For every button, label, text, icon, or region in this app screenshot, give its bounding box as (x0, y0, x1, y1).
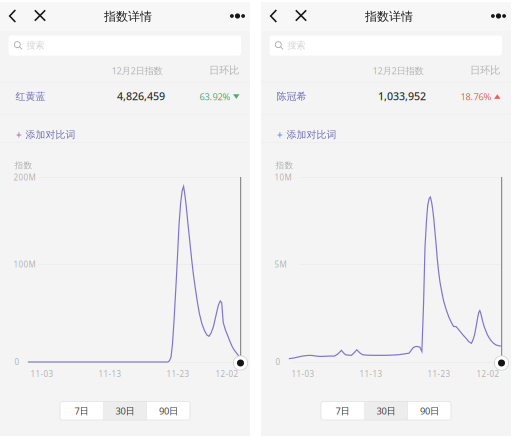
staticText: 30日 (115, 404, 134, 417)
staticText: 指数详情 (104, 9, 152, 24)
button[interactable]: 90日 (147, 402, 190, 420)
staticText: 12月2日指数 (372, 64, 423, 77)
staticText: 10M (274, 172, 291, 183)
button[interactable]: 搜索 (270, 35, 502, 55)
staticText: + (277, 128, 283, 141)
staticText: 添加对比词 (286, 128, 336, 141)
staticText: 1,033,952 (378, 89, 426, 103)
staticText: 90日 (420, 404, 439, 417)
staticText: 90日 (159, 404, 178, 417)
staticText: 200M (13, 172, 35, 183)
button[interactable]: Back (261, 4, 285, 28)
staticText: 搜索 (287, 40, 305, 51)
button[interactable]: 7日 (60, 402, 103, 420)
staticText: 30日 (376, 404, 395, 417)
staticText: 100M (13, 259, 35, 270)
staticText: 11-13 (98, 368, 121, 379)
staticText: 0 (15, 356, 20, 367)
staticText: 12月2日指数 (111, 64, 162, 77)
staticText: 7日 (74, 404, 88, 417)
staticText: 11-13 (359, 368, 382, 379)
staticText: 红黄蓝 (15, 90, 45, 103)
staticText: 12-02 (215, 368, 238, 379)
staticText: 5M (274, 259, 286, 270)
button[interactable]: 搜索 (9, 35, 241, 55)
staticText: 12-02 (476, 368, 499, 379)
staticText: 18.76% (460, 90, 491, 103)
button[interactable]: + (276, 122, 337, 147)
staticText: 搜索 (26, 40, 44, 51)
button[interactable]: 7日 (321, 402, 364, 420)
staticText: 4,826,459 (117, 89, 165, 103)
button[interactable]: 90日 (408, 402, 451, 420)
staticText: 11-03 (291, 368, 314, 379)
button[interactable]: More options (486, 4, 510, 28)
staticText: 指数 (15, 160, 33, 171)
button[interactable]: + (15, 122, 76, 147)
button[interactable]: 30日 (103, 402, 146, 420)
staticText: 添加对比词 (25, 128, 75, 141)
staticText: + (16, 128, 22, 141)
button[interactable]: 30日 (365, 402, 407, 420)
staticText: 0 (276, 356, 281, 367)
staticText: 陈冠希 (276, 90, 306, 103)
staticText: 指数 (276, 160, 294, 171)
staticText: 11-03 (30, 368, 53, 379)
staticText: 日环比 (470, 64, 500, 77)
button[interactable]: Close (289, 3, 313, 27)
staticText: 日环比 (209, 64, 239, 77)
button[interactable]: More options (225, 4, 249, 28)
staticText: 7日 (335, 404, 349, 417)
staticText: 指数详情 (365, 9, 413, 24)
staticText: 11-23 (427, 368, 450, 379)
button[interactable]: Close (28, 3, 52, 27)
staticText: 63.92% (199, 90, 230, 103)
staticText: 11-23 (166, 368, 189, 379)
button[interactable]: Back (0, 4, 24, 28)
